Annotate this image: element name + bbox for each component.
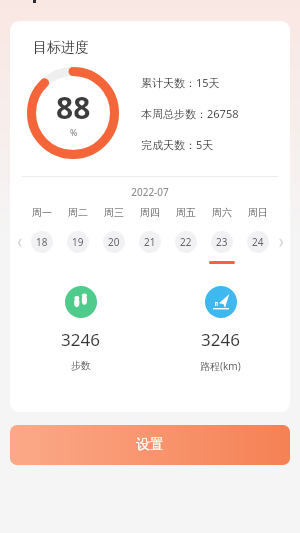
staticText: 2022-07 — [10, 185, 290, 199]
staticText: 19 — [72, 235, 84, 249]
staticText: 21 — [144, 235, 156, 249]
staticText: 18 — [36, 235, 48, 249]
button[interactable]: 18 — [24, 231, 60, 253]
button[interactable]: Distance — [205, 286, 237, 318]
staticText: 周五 — [176, 206, 196, 219]
button[interactable]: 20 — [96, 231, 132, 253]
staticText: 周二 — [68, 206, 88, 219]
button[interactable]: 21 — [132, 231, 168, 253]
staticText: 周一 — [32, 206, 52, 219]
staticText: 周日 — [248, 206, 268, 219]
button[interactable]: Next week — [276, 237, 290, 248]
button[interactable]: Steps — [65, 286, 97, 318]
button[interactable]: 24 — [240, 231, 276, 253]
staticText: 23 — [216, 235, 228, 249]
button[interactable]: 22 — [168, 231, 204, 253]
staticText: 3246 — [201, 328, 240, 351]
button[interactable]: 23 — [204, 231, 240, 253]
staticText: 步数 — [71, 359, 91, 372]
staticText: 3246 — [61, 328, 100, 351]
staticText: 》 — [279, 237, 288, 248]
staticText: 周三 — [104, 206, 124, 219]
staticText: 目标进度 — [33, 39, 89, 57]
staticText: 设置 — [136, 436, 164, 454]
staticText: 周六 — [212, 206, 232, 219]
staticText: 路程(km) — [200, 359, 241, 373]
staticText: 《 — [13, 237, 22, 248]
staticText: 周四 — [140, 206, 160, 219]
staticText: 20 — [108, 235, 120, 249]
staticText: 24 — [252, 235, 264, 249]
staticText: % — [70, 126, 78, 138]
button[interactable]: Previous week — [10, 237, 24, 248]
staticText: 本周总步数：26758 — [141, 106, 239, 121]
button[interactable]: 19 — [60, 231, 96, 253]
staticText: 22 — [180, 235, 192, 249]
staticText: 88 — [56, 87, 91, 128]
staticText: 累计天数：15天 — [141, 75, 220, 90]
button[interactable]: 设置 — [10, 425, 290, 465]
staticText: 完成天数：5天 — [141, 137, 214, 152]
